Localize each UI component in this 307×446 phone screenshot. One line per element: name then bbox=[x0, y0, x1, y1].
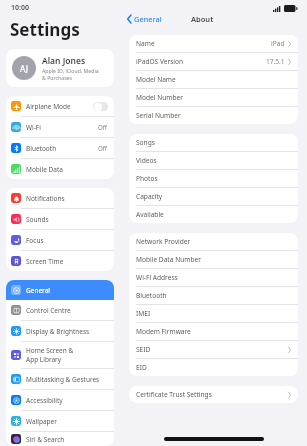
button[interactable]: Available bbox=[129, 206, 298, 223]
staticText: Accessibility bbox=[26, 396, 63, 405]
button[interactable]: iPadOS Version bbox=[129, 53, 298, 70]
button[interactable]: Serial Number bbox=[129, 107, 298, 124]
button[interactable]: Airplane Mode bbox=[6, 96, 114, 116]
staticText: Wallpaper bbox=[26, 417, 57, 426]
staticText: Capacity bbox=[136, 192, 291, 201]
staticText: Modem Firmware bbox=[136, 327, 291, 336]
staticText: Mobile Data Number bbox=[136, 255, 291, 264]
staticText: Model Number bbox=[136, 93, 291, 102]
staticText: Apple ID, iCloud, Media bbox=[42, 67, 99, 74]
staticText: iPad bbox=[271, 39, 285, 48]
staticText: Network Provider bbox=[136, 237, 291, 246]
staticText: Mobile Data bbox=[26, 165, 63, 174]
staticText: Model Name bbox=[136, 75, 291, 84]
staticText: EID bbox=[136, 363, 291, 372]
button[interactable]: Model Name bbox=[129, 71, 298, 88]
button[interactable]: Songs bbox=[129, 134, 298, 151]
staticText: 10:00 bbox=[11, 3, 29, 13]
staticText: iPadOS Version bbox=[136, 57, 266, 66]
staticText: Bluetooth bbox=[26, 144, 57, 153]
button[interactable]: Network Provider bbox=[129, 233, 298, 250]
button[interactable]: SEID bbox=[129, 341, 298, 358]
staticText: Control Centre bbox=[26, 306, 71, 315]
button[interactable]: Focus bbox=[6, 230, 114, 250]
staticText: Siri & Search bbox=[26, 435, 65, 444]
button[interactable]: Certificate Trust Settings bbox=[129, 386, 298, 403]
staticText: Airplane Mode bbox=[26, 102, 71, 111]
button[interactable]: Capacity bbox=[129, 188, 298, 205]
staticText: Serial Number bbox=[136, 111, 291, 120]
staticText: Off bbox=[98, 144, 108, 152]
staticText: Notifications bbox=[26, 194, 65, 203]
staticText: Name bbox=[136, 39, 271, 48]
button[interactable]: Mobile Data Number bbox=[129, 251, 298, 268]
button[interactable]: Wi-Fi bbox=[6, 117, 114, 137]
staticText: Songs bbox=[136, 138, 291, 147]
staticText: Certificate Trust Settings bbox=[136, 390, 288, 399]
staticText: Screen Time bbox=[26, 257, 64, 266]
button[interactable]: Wi-Fi Address bbox=[129, 269, 298, 286]
button[interactable]: Mobile Data bbox=[6, 159, 114, 179]
staticText: Off bbox=[98, 123, 108, 131]
button[interactable]: Notifications bbox=[6, 188, 114, 208]
staticText: AJ bbox=[20, 63, 28, 74]
button[interactable]: Control Centre bbox=[6, 300, 114, 320]
button[interactable]: Siri & Search bbox=[6, 432, 114, 446]
button[interactable]: Display & Brightness bbox=[6, 321, 114, 341]
button[interactable]: Photos bbox=[129, 170, 298, 187]
button[interactable]: General bbox=[125, 12, 164, 26]
button[interactable]: Screen Time bbox=[6, 251, 114, 271]
button[interactable]: EID bbox=[129, 359, 298, 376]
staticText: Display & Brightness bbox=[26, 327, 90, 336]
button[interactable]: AJ bbox=[6, 49, 114, 87]
staticText: Wi-Fi bbox=[26, 123, 41, 132]
staticText: Multitasking & Gestures bbox=[26, 375, 100, 384]
staticText: Wi-Fi Address bbox=[136, 273, 291, 282]
button[interactable]: Modem Firmware bbox=[129, 323, 298, 340]
button[interactable]: Sounds bbox=[6, 209, 114, 229]
staticText: Focus bbox=[26, 236, 44, 245]
button[interactable]: Multitasking & Gestures bbox=[6, 369, 114, 389]
button[interactable]: Accessibility bbox=[6, 390, 114, 410]
staticText: Available bbox=[136, 210, 291, 219]
button[interactable]: Wallpaper bbox=[6, 411, 114, 431]
button[interactable]: Bluetooth bbox=[6, 138, 114, 158]
staticText: Videos bbox=[136, 156, 291, 165]
staticText: Bluetooth bbox=[136, 291, 291, 300]
staticText: About bbox=[191, 14, 214, 24]
staticText: Sounds bbox=[26, 215, 49, 224]
button[interactable]: Videos bbox=[129, 152, 298, 169]
staticText: Settings bbox=[10, 18, 80, 41]
staticText: & Purchases bbox=[42, 74, 73, 81]
button[interactable]: General bbox=[6, 280, 114, 300]
staticText: App Library bbox=[26, 355, 62, 364]
button[interactable]: Home Screen & bbox=[6, 342, 114, 368]
button[interactable]: Bluetooth bbox=[129, 287, 298, 304]
staticText: General bbox=[26, 286, 50, 295]
staticText: SEID bbox=[136, 345, 288, 354]
staticText: General bbox=[134, 14, 162, 24]
staticText: Home Screen & bbox=[26, 346, 74, 355]
staticText: Alan Jones bbox=[42, 55, 86, 67]
staticText: 17.5.1 bbox=[266, 57, 285, 66]
button[interactable]: IMEI bbox=[129, 305, 298, 322]
staticText: IMEI bbox=[136, 309, 291, 318]
button[interactable]: Model Number bbox=[129, 89, 298, 106]
button[interactable]: Name bbox=[129, 35, 298, 52]
staticText: Photos bbox=[136, 174, 291, 183]
